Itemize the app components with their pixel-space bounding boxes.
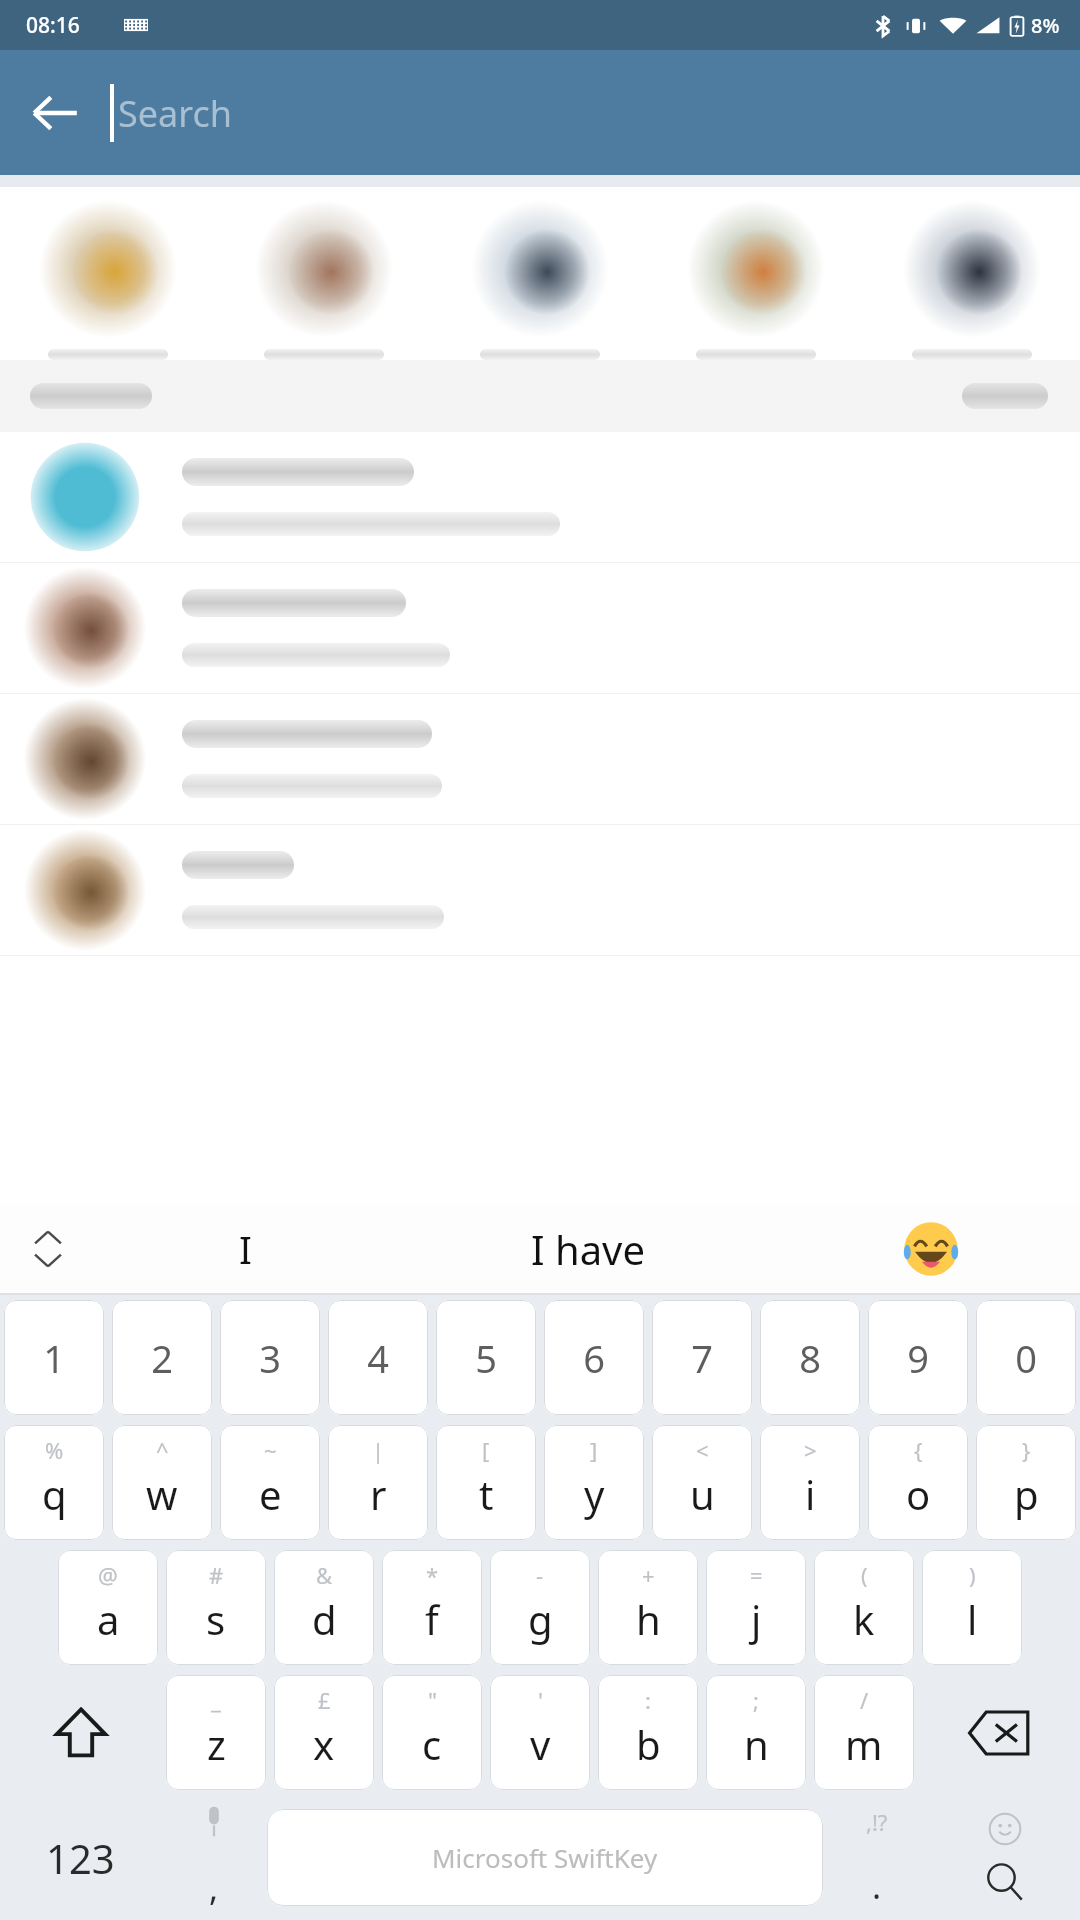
- staticText: j: [751, 1592, 762, 1646]
- button[interactable]: [0, 825, 1080, 955]
- staticText: Microsoft SwiftKey: [432, 1840, 658, 1875]
- button[interactable]: ): [922, 1550, 1022, 1665]
- staticText: [: [482, 1435, 490, 1465]
- button[interactable]: 1: [4, 1300, 104, 1415]
- button[interactable]: -: [490, 1550, 590, 1665]
- button[interactable]: }: [976, 1425, 1076, 1540]
- staticText: x: [313, 1717, 335, 1771]
- staticText: ,: [209, 1865, 219, 1911]
- button[interactable]: 9: [868, 1300, 968, 1415]
- staticText: ': [538, 1685, 543, 1715]
- button[interactable]: Expand suggestions: [0, 1205, 96, 1293]
- staticText: 9: [907, 1332, 929, 1384]
- staticText: 7: [691, 1332, 713, 1384]
- button[interactable]: |: [328, 1425, 428, 1540]
- staticText: {: [914, 1435, 923, 1465]
- staticText: p: [1014, 1467, 1039, 1521]
- staticText: =: [750, 1560, 763, 1590]
- staticText: :: [645, 1685, 651, 1715]
- staticText: 0: [1015, 1332, 1037, 1384]
- button[interactable]: &: [274, 1550, 374, 1665]
- button[interactable]: ~: [220, 1425, 320, 1540]
- button[interactable]: /: [814, 1675, 914, 1790]
- button[interactable]: @: [58, 1550, 158, 1665]
- button[interactable]: Emoji suggestion: [782, 1205, 1080, 1293]
- staticText: %: [45, 1435, 64, 1465]
- staticText: ;: [753, 1685, 759, 1715]
- button[interactable]: _: [166, 1675, 266, 1790]
- staticText: h: [636, 1592, 661, 1646]
- staticText: o: [906, 1467, 931, 1521]
- button[interactable]: 4: [328, 1300, 428, 1415]
- staticText: }: [1022, 1435, 1031, 1465]
- staticText: _: [211, 1685, 221, 1715]
- button[interactable]: [216, 187, 432, 360]
- button[interactable]: Back: [0, 50, 110, 175]
- button[interactable]: £: [274, 1675, 374, 1790]
- staticText: (: [861, 1560, 868, 1590]
- button[interactable]: 123: [0, 1795, 160, 1920]
- button[interactable]: 2: [112, 1300, 212, 1415]
- button[interactable]: ': [490, 1675, 590, 1790]
- staticText: .: [872, 1863, 882, 1909]
- staticText: y: [584, 1467, 605, 1521]
- button[interactable]: 5: [436, 1300, 536, 1415]
- button[interactable]: I have: [394, 1205, 782, 1293]
- button[interactable]: <: [652, 1425, 752, 1540]
- button[interactable]: Shift: [0, 1670, 162, 1795]
- staticText: s: [206, 1592, 226, 1646]
- staticText: |: [372, 1435, 385, 1465]
- button[interactable]: ": [382, 1675, 482, 1790]
- button[interactable]: [0, 694, 1080, 824]
- button[interactable]: ^: [112, 1425, 212, 1540]
- button[interactable]: Comma, voice input: [160, 1795, 267, 1920]
- button[interactable]: 0: [976, 1300, 1076, 1415]
- button[interactable]: 6: [544, 1300, 644, 1415]
- button[interactable]: Search: [110, 50, 1080, 175]
- staticText: 1: [43, 1332, 65, 1384]
- staticText: r: [370, 1467, 387, 1521]
- button[interactable]: ;: [706, 1675, 806, 1790]
- button[interactable]: Search: [930, 1795, 1080, 1920]
- button[interactable]: #: [166, 1550, 266, 1665]
- staticText: m: [845, 1717, 883, 1771]
- staticText: 3: [259, 1332, 281, 1384]
- staticText: 6: [583, 1332, 605, 1384]
- staticText: k: [853, 1592, 875, 1646]
- staticText: &: [316, 1560, 333, 1590]
- staticText: ]: [590, 1435, 598, 1465]
- button[interactable]: 8: [760, 1300, 860, 1415]
- button[interactable]: Backspace: [918, 1670, 1080, 1795]
- staticText: n: [744, 1717, 769, 1771]
- button[interactable]: +: [598, 1550, 698, 1665]
- staticText: f: [425, 1592, 439, 1646]
- button[interactable]: ]: [544, 1425, 644, 1540]
- staticText: 5: [475, 1332, 497, 1384]
- button[interactable]: {: [868, 1425, 968, 1540]
- staticText: d: [312, 1592, 337, 1646]
- button[interactable]: [648, 187, 864, 360]
- button[interactable]: [0, 432, 1080, 562]
- staticText: v: [530, 1717, 551, 1771]
- staticText: 2: [151, 1332, 173, 1384]
- button[interactable]: [432, 187, 648, 360]
- staticText: -: [536, 1560, 544, 1590]
- button[interactable]: [: [436, 1425, 536, 1540]
- button[interactable]: 7: [652, 1300, 752, 1415]
- staticText: ^: [156, 1435, 169, 1465]
- button[interactable]: I: [96, 1205, 394, 1293]
- button[interactable]: (: [814, 1550, 914, 1665]
- button[interactable]: [864, 187, 1080, 360]
- button[interactable]: =: [706, 1550, 806, 1665]
- button[interactable]: 3: [220, 1300, 320, 1415]
- staticText: £: [318, 1685, 331, 1715]
- button[interactable]: %: [4, 1425, 104, 1540]
- staticText: u: [690, 1467, 715, 1521]
- button[interactable]: Space: [267, 1809, 823, 1906]
- button[interactable]: *: [382, 1550, 482, 1665]
- button[interactable]: [0, 187, 216, 360]
- button[interactable]: Period and punctuation: [823, 1795, 930, 1920]
- button[interactable]: >: [760, 1425, 860, 1540]
- button[interactable]: :: [598, 1675, 698, 1790]
- button[interactable]: [0, 563, 1080, 693]
